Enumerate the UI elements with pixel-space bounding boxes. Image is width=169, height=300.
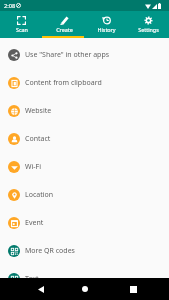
button[interactable]: Settings bbox=[127, 11, 169, 38]
button[interactable]: Contact bbox=[0, 125, 169, 153]
button[interactable]: Scan bbox=[0, 11, 43, 38]
staticText: More QR codes bbox=[25, 246, 75, 256]
button[interactable]: Create bbox=[43, 11, 85, 38]
staticText: Scan bbox=[16, 26, 28, 33]
staticText: Create bbox=[56, 26, 73, 33]
button[interactable]: Location bbox=[0, 181, 169, 209]
staticText: Website bbox=[25, 106, 52, 116]
staticText: Event bbox=[25, 218, 44, 228]
staticText: Wi-Fi bbox=[25, 162, 42, 172]
staticText: 2:08 bbox=[4, 2, 16, 10]
button[interactable]: Home bbox=[78, 282, 92, 296]
button[interactable]: History bbox=[85, 11, 127, 38]
button[interactable]: Wi-Fi bbox=[0, 153, 169, 181]
staticText: Use "Share" in other apps bbox=[25, 50, 110, 60]
staticText: Location bbox=[25, 190, 54, 200]
staticText: Text bbox=[25, 274, 39, 284]
button[interactable]: Back bbox=[34, 282, 48, 296]
staticText: Contact bbox=[25, 134, 51, 144]
button[interactable]: Event bbox=[0, 209, 169, 237]
button[interactable]: Text bbox=[0, 265, 169, 293]
button[interactable]: Content from clipboard bbox=[0, 69, 169, 97]
button[interactable]: Use "Share" in other apps bbox=[0, 41, 169, 69]
staticText: Content from clipboard bbox=[25, 78, 102, 88]
button[interactable]: Website bbox=[0, 97, 169, 125]
staticText: Settings bbox=[138, 26, 159, 33]
staticText: History bbox=[97, 26, 116, 33]
button[interactable]: Recents bbox=[126, 282, 140, 296]
button[interactable]: More QR codes bbox=[0, 237, 169, 265]
